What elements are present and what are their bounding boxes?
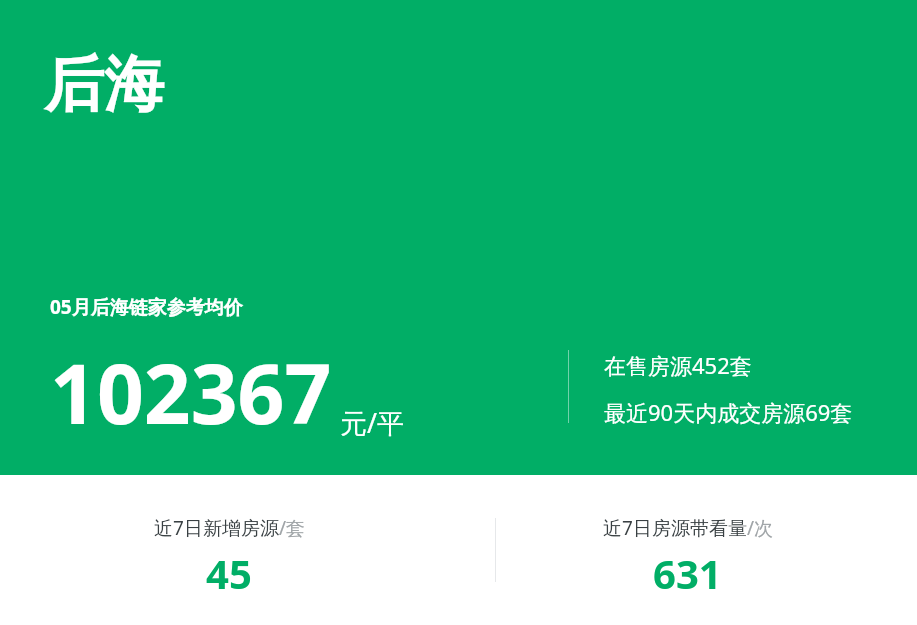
staticText: 在售房源452套 [604,350,752,380]
staticText: 近7日新增房源/套 [154,515,305,541]
button[interactable]: 近7日房源带看量/次 [458,475,917,625]
staticText: 后海 [44,47,164,123]
button[interactable]: 后海 [0,0,917,475]
staticText: 45 [206,546,252,600]
staticText: 631 [653,546,722,600]
staticText: 近7日房源带看量/次 [603,515,773,541]
staticText: 05月后海链家参考均价 [50,294,243,320]
staticText: 元/平 [340,404,405,441]
staticText: 最近90天内成交房源69套 [604,397,853,427]
button[interactable]: 近7日新增房源/套 [0,475,458,600]
staticText: 102367 [50,336,332,448]
